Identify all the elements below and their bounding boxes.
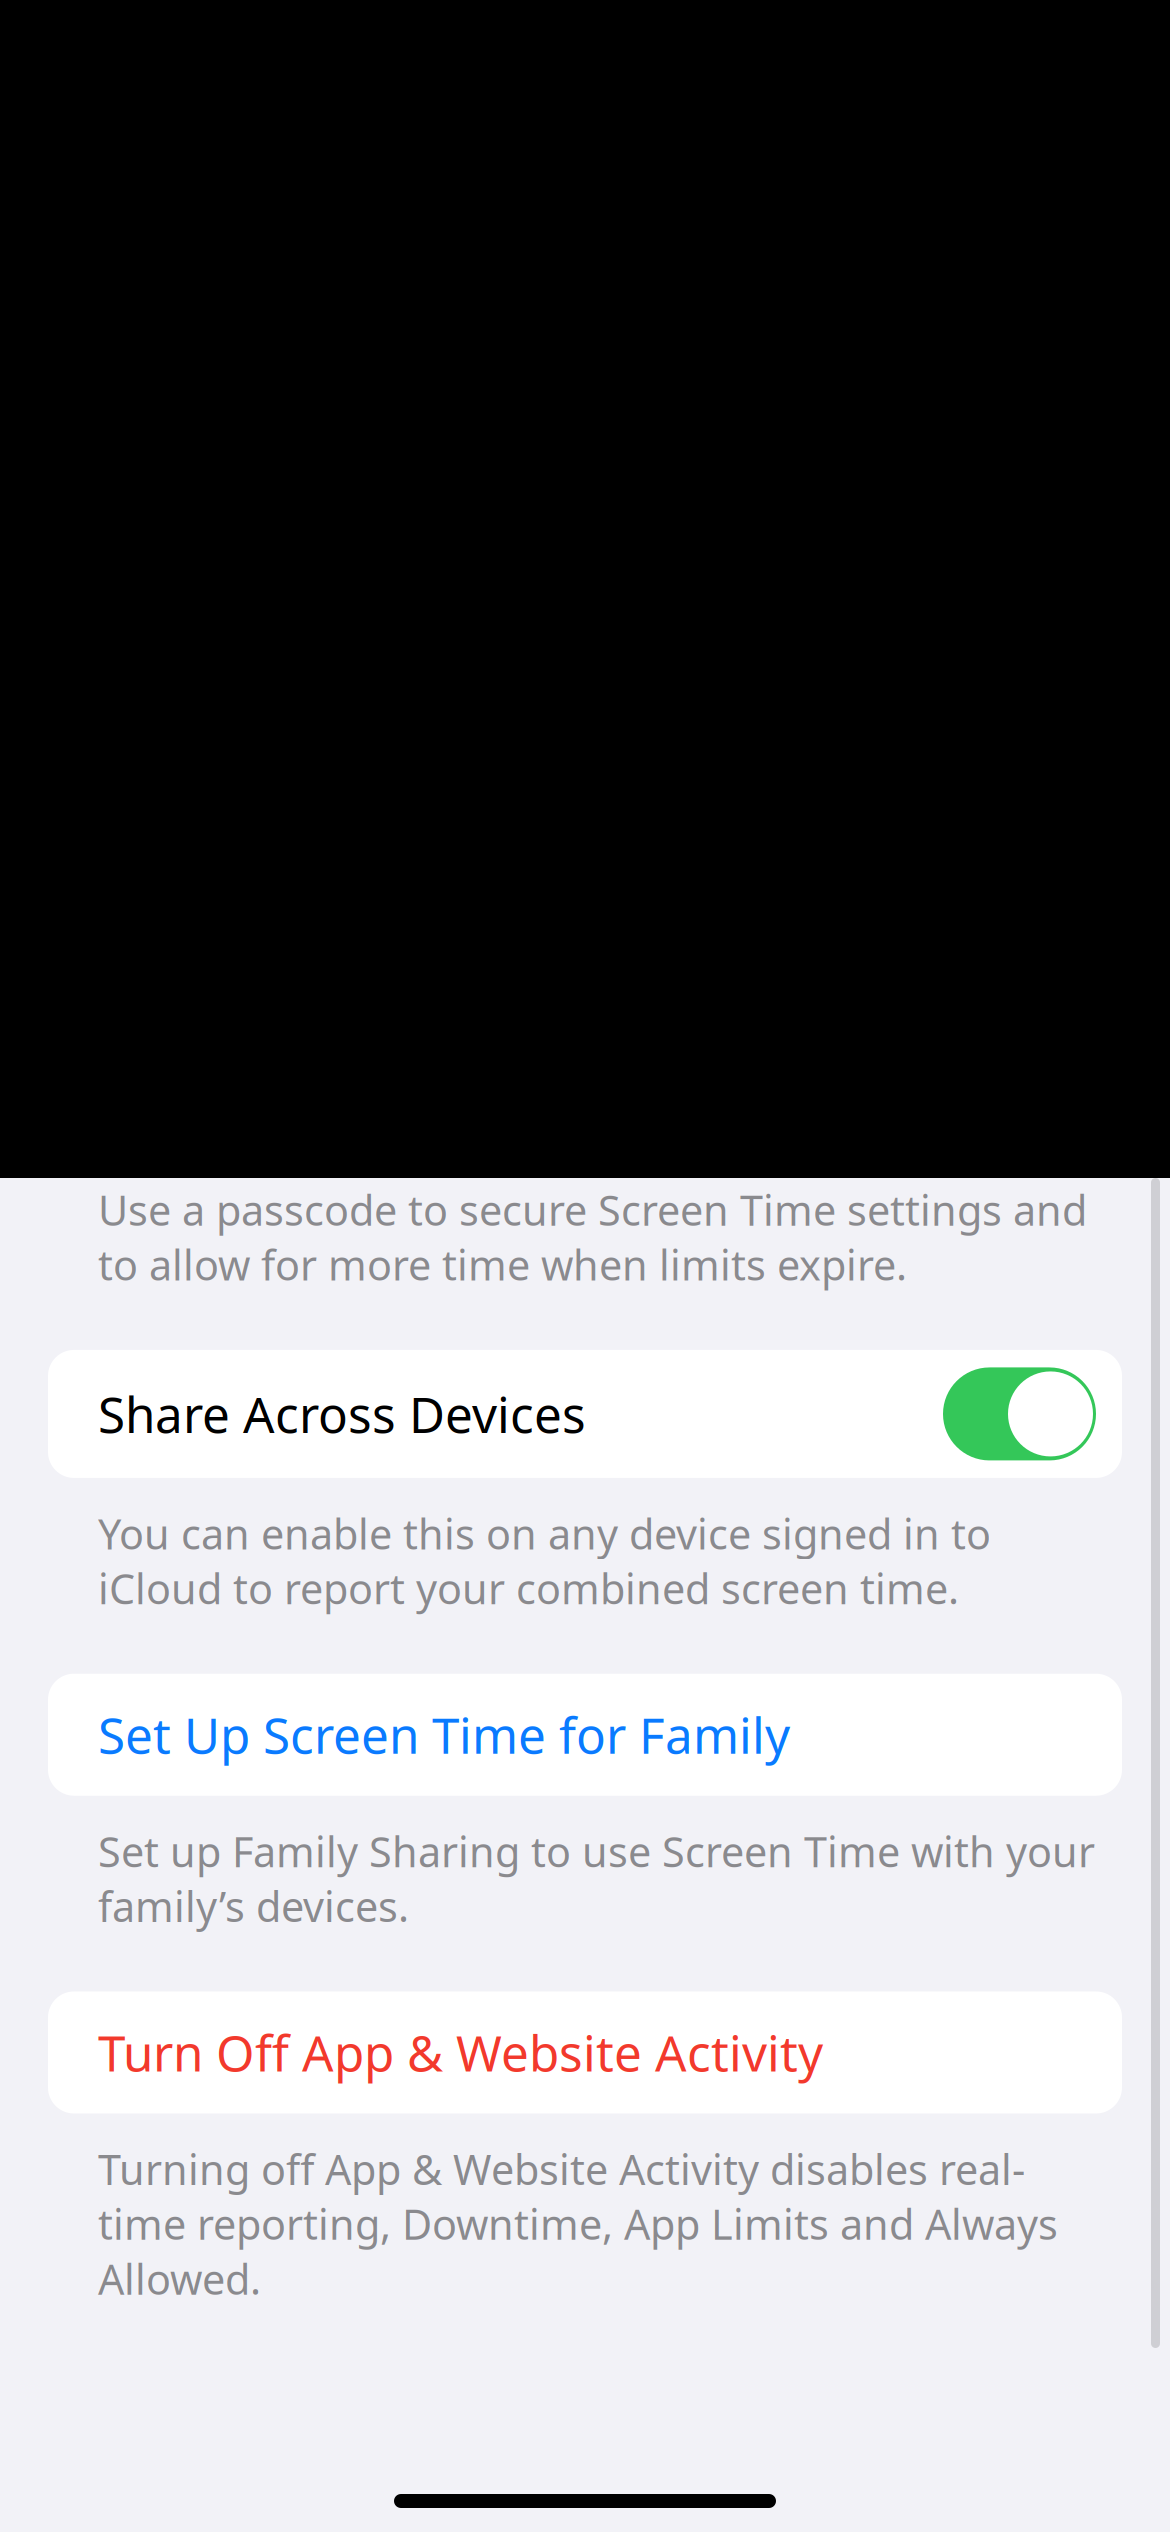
staticText: Turning off App & Website Activity disab… xyxy=(98,2141,1058,2306)
staticText: Set Up Screen Time for Family xyxy=(98,1702,790,1767)
button[interactable]: Share Across Devices, on xyxy=(943,1367,1096,1460)
staticText: You can enable this on any device signed… xyxy=(98,1506,991,1616)
staticText: Turn Off App & Website Activity xyxy=(98,2020,823,2085)
button[interactable]: Turn Off App & Website Activity xyxy=(48,1991,1122,2113)
staticText: Share Across Devices xyxy=(98,1381,586,1447)
staticText: Use a passcode to secure Screen Time set… xyxy=(98,1182,1087,1292)
staticText: Set up Family Sharing to use Screen Time… xyxy=(98,1824,1095,1933)
button[interactable]: Set Up Screen Time for Family xyxy=(48,1674,1122,1796)
